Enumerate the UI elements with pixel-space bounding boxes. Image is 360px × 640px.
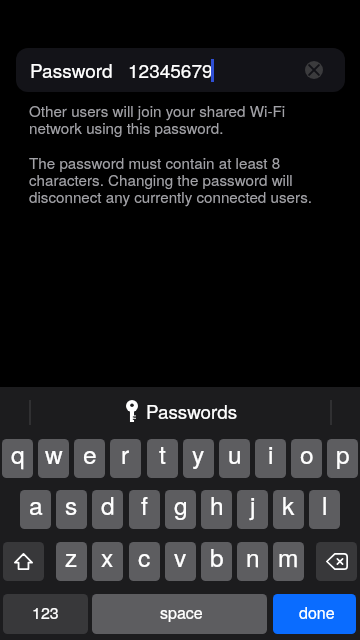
button[interactable]: w: [38, 439, 69, 478]
staticText: o: [300, 439, 314, 471]
button[interactable]: Passwords: [123, 400, 237, 425]
button[interactable]: j: [237, 490, 268, 529]
staticText: y: [192, 439, 205, 471]
button[interactable]: p: [327, 439, 358, 478]
staticText: c: [138, 542, 151, 574]
staticText: w: [45, 439, 63, 471]
button[interactable]: done: [273, 594, 356, 634]
staticText: space: [160, 601, 203, 624]
staticText: l: [322, 490, 328, 522]
staticText: 123: [32, 601, 59, 624]
button[interactable]: s: [56, 490, 87, 529]
staticText: k: [282, 490, 295, 522]
button[interactable]: k: [273, 490, 304, 529]
staticText: q: [11, 439, 25, 471]
button[interactable]: q: [2, 439, 33, 478]
button[interactable]: e: [74, 439, 105, 478]
button[interactable]: r: [110, 439, 141, 478]
button[interactable]: space: [92, 594, 267, 634]
staticText: s: [65, 490, 78, 522]
button[interactable]: o: [291, 439, 322, 478]
staticText: u: [228, 439, 242, 471]
staticText: b: [210, 542, 224, 574]
staticText: p: [336, 439, 350, 471]
button[interactable]: Shift: [3, 542, 44, 581]
button[interactable]: g: [165, 490, 196, 529]
staticText: 12345679: [128, 56, 213, 83]
staticText: x: [101, 542, 114, 574]
staticText: f: [141, 490, 148, 522]
button[interactable]: v: [165, 542, 196, 581]
button[interactable]: c: [129, 542, 160, 581]
staticText: Other users will join your shared Wi-Fi …: [29, 100, 286, 139]
button[interactable]: t: [147, 439, 178, 478]
button[interactable]: h: [201, 490, 232, 529]
staticText: d: [101, 490, 115, 522]
button[interactable]: d: [92, 490, 123, 529]
button[interactable]: b: [201, 542, 232, 581]
staticText: done: [299, 601, 335, 624]
staticText: v: [174, 542, 187, 574]
staticText: z: [65, 542, 78, 574]
staticText: r: [121, 439, 130, 471]
button[interactable]: u: [219, 439, 250, 478]
button[interactable]: l: [309, 490, 340, 529]
staticText: Password: [30, 56, 113, 83]
button[interactable]: Clear text: [305, 61, 323, 79]
button[interactable]: 123: [3, 594, 88, 634]
button[interactable]: i: [255, 439, 286, 478]
button[interactable]: f: [129, 490, 160, 529]
staticText: Passwords: [146, 397, 238, 422]
button[interactable]: a: [20, 490, 51, 529]
button[interactable]: z: [56, 542, 87, 581]
staticText: n: [246, 542, 260, 574]
staticText: m: [278, 542, 299, 574]
button[interactable]: Backspace: [316, 542, 357, 581]
staticText: g: [174, 490, 188, 522]
button[interactable]: x: [92, 542, 123, 581]
button[interactable]: m: [273, 542, 304, 581]
staticText: i: [268, 439, 274, 471]
staticText: t: [159, 439, 166, 471]
staticText: j: [250, 490, 256, 522]
button[interactable]: Password: [16, 48, 345, 92]
staticText: e: [83, 439, 97, 471]
button[interactable]: n: [237, 542, 268, 581]
staticText: The password must contain at least 8 cha…: [29, 152, 312, 208]
staticText: h: [210, 490, 224, 522]
staticText: a: [29, 490, 43, 522]
button[interactable]: y: [183, 439, 214, 478]
